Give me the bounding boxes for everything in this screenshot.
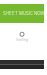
staticText: loading [16, 37, 28, 41]
button[interactable]: SHEET MUSIC NOW [0, 4, 44, 23]
staticText: SHEET MUSIC NOW [3, 11, 44, 16]
